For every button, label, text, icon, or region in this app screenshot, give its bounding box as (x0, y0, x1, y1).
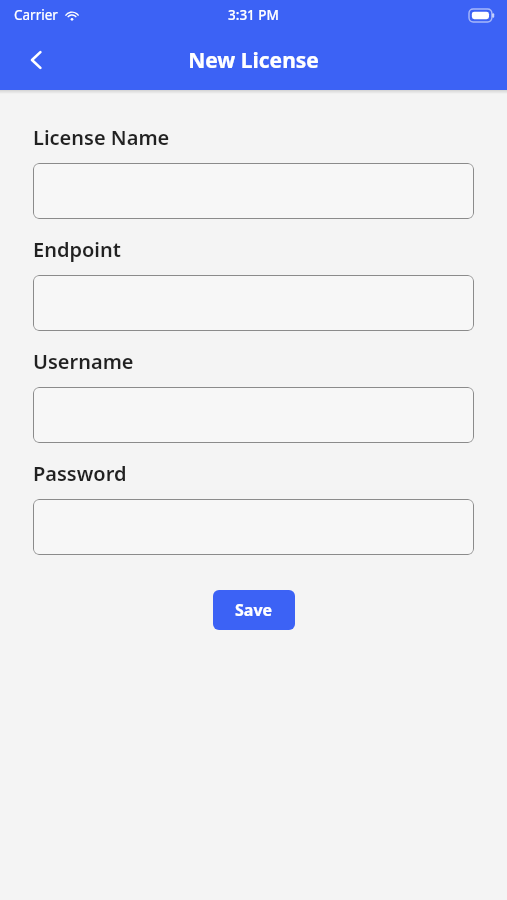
staticText: License Name (33, 124, 170, 151)
staticText: Save (235, 599, 273, 621)
button[interactable] (33, 275, 474, 331)
staticText: Carrier (14, 6, 58, 24)
staticText: Endpoint (33, 236, 121, 263)
staticText: New License (188, 46, 319, 75)
button[interactable]: Save (213, 590, 295, 630)
button[interactable] (33, 499, 474, 555)
staticText: Username (33, 348, 134, 375)
staticText: Password (33, 460, 127, 487)
button[interactable] (33, 387, 474, 443)
button[interactable] (33, 163, 474, 219)
staticText: 3:31 PM (228, 6, 279, 24)
button[interactable]: Back (14, 38, 58, 82)
